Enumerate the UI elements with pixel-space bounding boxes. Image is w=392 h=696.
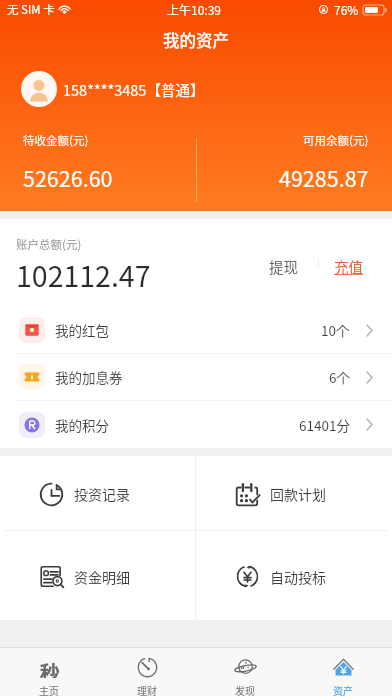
staticText: 无 SIM 卡 [7, 1, 55, 18]
button[interactable]: 秒 [0, 648, 98, 696]
button[interactable]: 提现 [259, 250, 308, 283]
staticText: 上午10:39 [167, 1, 221, 18]
staticText: 我的红包 [55, 320, 109, 340]
staticText: 10个 [321, 320, 350, 340]
staticText: 资产 [333, 683, 353, 696]
button[interactable]: 自动投标 [196, 531, 392, 620]
staticText: 61401分 [299, 415, 350, 435]
staticText: 待收金额(元) [23, 132, 89, 149]
button[interactable]: 资产 [294, 648, 392, 696]
staticText: 发现 [235, 683, 255, 696]
staticText: 可用余额(元) [303, 132, 369, 149]
staticText: 理财 [137, 683, 157, 696]
staticText: 回款计划 [270, 484, 326, 504]
staticText: 49285.87 [279, 162, 369, 193]
staticText: 158****3485【普通】 [63, 79, 205, 100]
staticText: 102112.47 [16, 254, 151, 295]
button[interactable]: 回款计划 [196, 456, 392, 530]
staticText: 账户总额(元) [16, 236, 82, 253]
staticText: 主页 [39, 683, 59, 696]
staticText: 52626.60 [23, 162, 113, 193]
button[interactable]: 资金明细 [0, 531, 195, 620]
button[interactable]: 我的积分 [0, 401, 392, 448]
button[interactable]: 发现 [196, 648, 294, 696]
staticText: 我的资产 [163, 28, 229, 52]
staticText: 76% [334, 1, 359, 18]
staticText: 秒 [40, 657, 60, 678]
staticText: 我的加息券 [55, 367, 123, 387]
button[interactable]: 投资记录 [0, 456, 195, 530]
button[interactable]: 我的加息券 [0, 354, 392, 400]
staticText: 我的积分 [55, 415, 109, 435]
staticText: 自动投标 [270, 567, 326, 587]
staticText: 提现 [269, 256, 298, 277]
button[interactable]: 我的红包 [0, 307, 392, 353]
button[interactable]: 理财 [98, 648, 196, 696]
staticText: 资金明细 [74, 567, 130, 587]
staticText: 投资记录 [74, 484, 130, 504]
staticText: 6个 [329, 367, 350, 387]
button[interactable]: 充值 [319, 250, 392, 283]
staticText: 充值 [334, 256, 363, 277]
